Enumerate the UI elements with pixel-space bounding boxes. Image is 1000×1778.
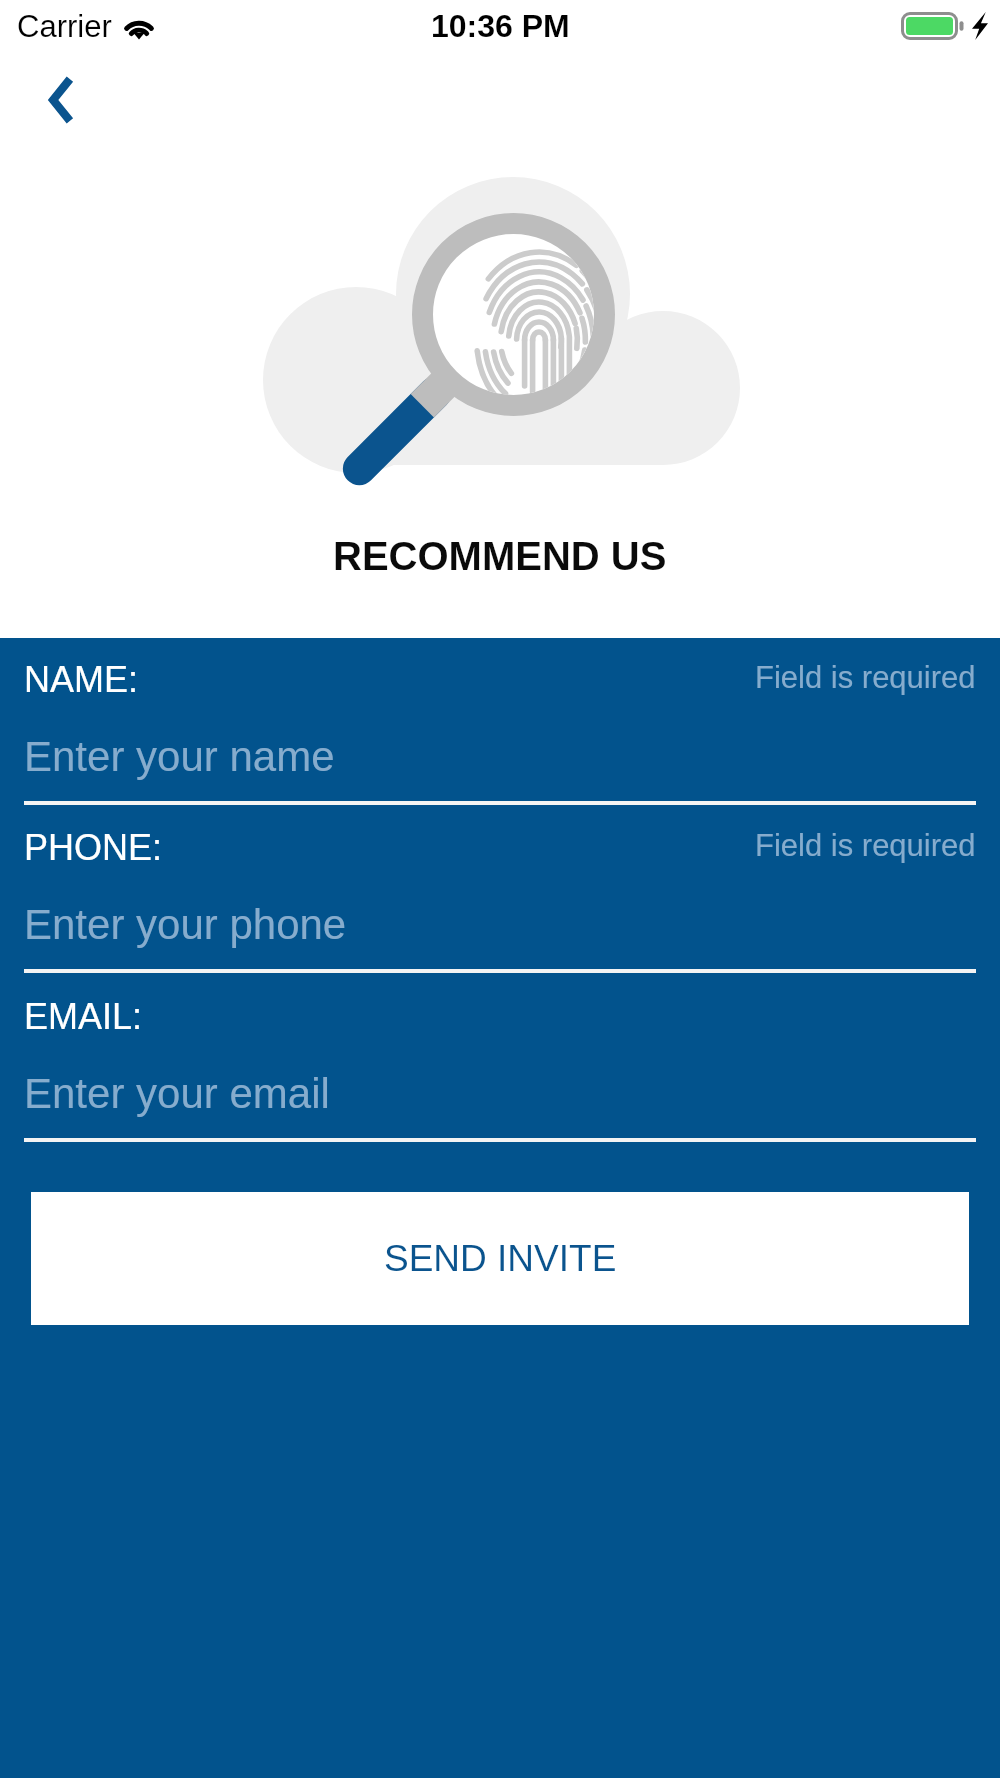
button[interactable]: SEND INVITE — [31, 1192, 969, 1325]
button[interactable]: Enter your phone — [0, 893, 1000, 969]
staticText: PHONE: — [24, 827, 163, 867]
staticText: RECOMMEND US — [333, 534, 667, 579]
staticText: Enter your phone — [24, 901, 347, 948]
button[interactable]: Back — [10, 52, 110, 142]
staticText: Carrier — [17, 9, 112, 44]
staticText: 10:36 PM — [431, 8, 570, 44]
staticText: Enter your name — [24, 733, 335, 780]
staticText: SEND INVITE — [384, 1238, 617, 1279]
staticText: Field is required — [755, 660, 976, 695]
button[interactable]: Enter your email — [0, 1062, 1000, 1138]
staticText: NAME: — [24, 659, 139, 699]
button[interactable]: Enter your name — [0, 725, 1000, 801]
staticText: Enter your email — [24, 1070, 330, 1117]
staticText: Field is required — [755, 828, 976, 863]
staticText: EMAIL: — [24, 996, 143, 1036]
